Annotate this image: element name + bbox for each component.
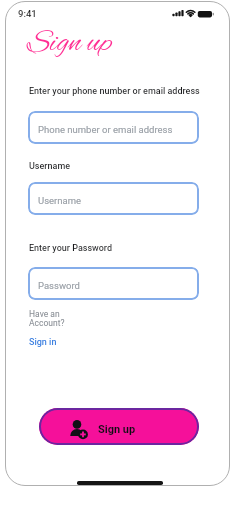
- button[interactable]: Username: [28, 182, 199, 215]
- staticText: 9:41: [18, 8, 37, 19]
- staticText: Phone number or email address: [38, 124, 173, 135]
- button[interactable]: Sign in: [29, 337, 57, 348]
- staticText: Sign up: [98, 423, 136, 436]
- staticText: Username: [29, 161, 71, 172]
- button[interactable]: Password: [28, 267, 199, 300]
- staticText: Sign up: [27, 24, 113, 63]
- staticText: Enter your Password: [29, 243, 113, 254]
- button[interactable]: Phone number or email address: [28, 111, 199, 144]
- staticText: Enter your phone number or email address: [29, 86, 200, 97]
- staticText: Account?: [29, 318, 65, 328]
- staticText: Username: [38, 195, 82, 206]
- button[interactable]: [39, 408, 199, 445]
- staticText: Password: [38, 280, 80, 291]
- staticText: Have an: [29, 309, 60, 319]
